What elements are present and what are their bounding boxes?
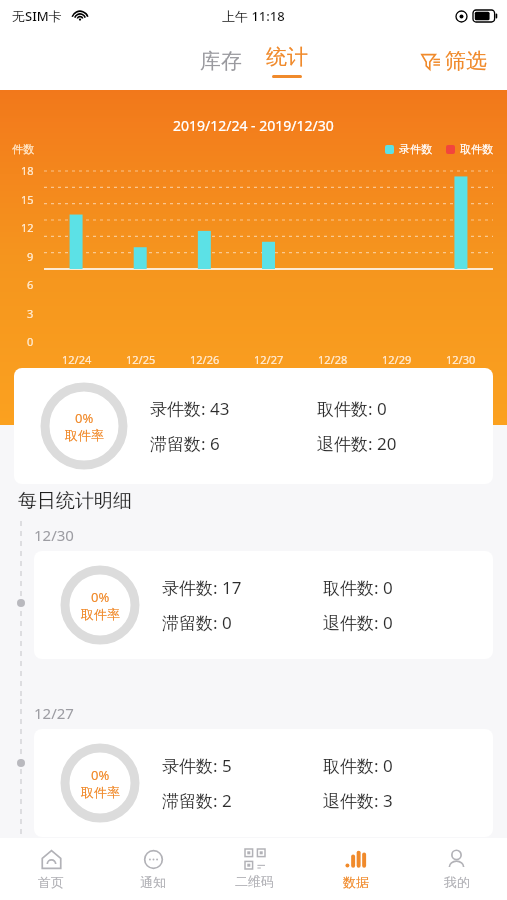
staticText: 12/29 [382,352,412,367]
staticText: 3 [27,306,34,320]
button[interactable]: 0% [34,729,493,837]
button[interactable]: 筛选 [417,44,491,78]
staticText: 库存 [200,48,242,74]
button[interactable]: 二维码 [204,838,305,900]
staticText: 录件数: 43 [150,397,317,420]
staticText: 录件数 [399,142,432,156]
staticText: 12/27 [34,703,74,723]
staticText: 0% [91,588,110,606]
staticText: 12/30 [446,352,476,367]
staticText: 滞留数: 0 [162,611,323,634]
staticText: 9 [27,249,34,263]
staticText: 12/26 [190,352,220,367]
staticText: 取件数: 0 [317,397,485,420]
staticText: 数据 [343,874,369,890]
staticText: 0% [91,766,110,784]
staticText: 退件数: 20 [317,432,485,455]
staticText: 12/27 [254,352,284,367]
staticText: 18 [21,163,34,177]
staticText: 录件数: 5 [162,754,323,777]
staticText: 滞留数: 6 [150,432,317,455]
staticText: 12/25 [126,352,156,367]
staticText: 2019/12/24 - 2019/12/30 [173,116,334,135]
other: 筛选 [421,51,441,71]
staticText: 件数 [12,142,34,156]
staticText: 退件数: 0 [323,611,485,634]
staticText: 12/30 [34,525,74,545]
staticText: 取件率 [65,427,104,443]
staticText: 无SIM卡 [12,7,62,25]
button[interactable]: 我的 [406,838,507,900]
staticText: 退件数: 3 [323,789,485,812]
staticText: 筛选 [445,48,487,74]
staticText: 0% [75,409,94,427]
staticText: 取件率 [81,606,120,622]
staticText: 滞留数: 2 [162,789,323,812]
staticText: 我的 [444,874,470,890]
button[interactable]: 0% [34,551,493,659]
staticText: 取件数: 0 [323,754,485,777]
staticText: 上午 11:18 [222,7,285,25]
button[interactable]: 首页 [0,838,102,900]
staticText: 每日统计明细 [18,489,132,513]
button[interactable]: 库存 [192,42,250,80]
button[interactable]: 数据 [305,838,406,900]
button[interactable]: 通知 [102,838,204,900]
staticText: 0 [27,334,34,348]
button[interactable]: 统计 [258,42,316,80]
staticText: 首页 [38,874,64,890]
staticText: 录件数: 17 [162,576,323,599]
staticText: 统计 [266,44,308,70]
staticText: 取件率 [81,784,120,800]
staticText: 通知 [140,874,166,890]
staticText: 取件数 [460,142,493,156]
staticText: 12/24 [62,352,92,367]
staticText: 12 [21,220,34,234]
staticText: 二维码 [235,873,274,889]
staticText: 12/28 [318,352,348,367]
button[interactable]: 0% [14,368,493,484]
staticText: 6 [27,277,34,291]
staticText: 15 [21,192,34,206]
staticText: 取件数: 0 [323,576,485,599]
